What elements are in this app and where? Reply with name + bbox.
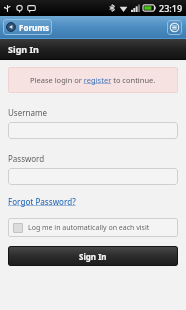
- staticText: Username: [8, 107, 47, 118]
- staticText: Log me in automatically on each visit: [28, 223, 150, 233]
- button[interactable]: [8, 122, 178, 139]
- staticText: Sign In: [79, 251, 107, 262]
- staticText: Forgot Password?: [8, 196, 76, 207]
- staticText: 23:19: [159, 2, 183, 14]
- button[interactable]: Sign In: [8, 246, 178, 266]
- button[interactable]: [8, 168, 178, 185]
- button[interactable]: Forgot Password?: [8, 196, 76, 207]
- button[interactable]: Menu: [167, 20, 182, 35]
- staticText: Please login or register to continue.: [30, 75, 156, 85]
- button[interactable]: Forums: [3, 19, 52, 35]
- button[interactable]: Log me in automatically on each visit: [8, 218, 178, 237]
- staticText: Password: [8, 153, 45, 164]
- staticText: Forums: [19, 22, 49, 33]
- staticText: Sign In: [8, 43, 39, 55]
